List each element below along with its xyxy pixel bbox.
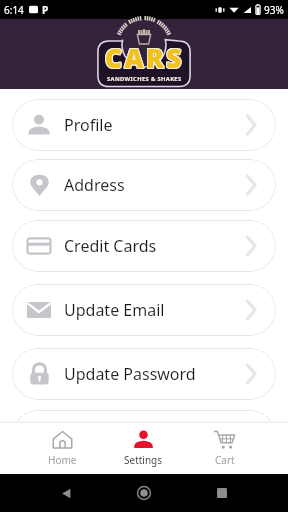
- button[interactable]: Profile: [12, 99, 276, 151]
- staticText: Cart: [215, 453, 235, 467]
- staticText: 6:14: [4, 3, 24, 17]
- staticText: CARS: [104, 41, 183, 76]
- button[interactable]: Update Email: [12, 284, 276, 336]
- staticText: 93%: [264, 3, 284, 17]
- staticText: CARS: [106, 39, 185, 74]
- staticText: Update Email: [64, 299, 165, 321]
- button[interactable]: Settings: [103, 422, 184, 474]
- staticText: Home: [48, 453, 77, 467]
- staticText: Update Password: [64, 363, 196, 385]
- staticText: CARS: [105, 40, 184, 75]
- staticText: CARS: [106, 41, 185, 76]
- button[interactable]: Home: [22, 422, 103, 474]
- staticText: SANDWICHES & SHAKES: [107, 75, 182, 83]
- staticText: Credit Cards: [64, 235, 157, 257]
- staticText: CARS: [104, 40, 183, 75]
- staticText: P: [42, 3, 49, 17]
- staticText: CARS: [106, 40, 185, 75]
- staticText: CARS: [105, 41, 184, 76]
- staticText: Profile: [64, 114, 113, 136]
- staticText: CARS: [104, 39, 183, 74]
- button[interactable]: Cart: [184, 422, 265, 474]
- staticText: Address: [64, 174, 125, 196]
- staticText: CARS: [105, 39, 184, 74]
- button[interactable]: Home: [134, 483, 154, 503]
- button[interactable]: Credit Cards: [12, 220, 276, 272]
- button[interactable]: Recents: [212, 483, 232, 503]
- button[interactable]: Update Password: [12, 348, 276, 400]
- staticText: Settings: [124, 453, 163, 467]
- staticText: Logout: [64, 425, 118, 447]
- button[interactable]: Back: [56, 483, 76, 503]
- button[interactable]: Address: [12, 159, 276, 211]
- button[interactable]: Logout: [12, 410, 276, 462]
